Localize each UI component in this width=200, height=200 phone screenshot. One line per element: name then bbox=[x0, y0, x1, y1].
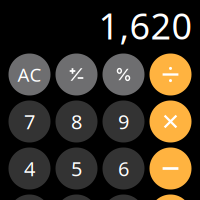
staticText: 8 bbox=[71, 108, 82, 135]
button[interactable]: 9 bbox=[102, 100, 144, 142]
button[interactable]: 7 bbox=[8, 100, 50, 142]
button[interactable]: Minus bbox=[149, 147, 191, 189]
staticText: AC bbox=[17, 62, 41, 87]
button[interactable]: 3 bbox=[102, 194, 144, 200]
button[interactable]: Percent bbox=[102, 53, 144, 95]
button[interactable]: Multiply bbox=[149, 100, 191, 142]
staticText: 4 bbox=[24, 155, 35, 182]
button[interactable]: Divide bbox=[149, 53, 191, 95]
staticText: 7 bbox=[24, 108, 35, 135]
staticText: 9 bbox=[118, 108, 129, 135]
button[interactable]: 1 bbox=[8, 194, 50, 200]
button[interactable]: Plus bbox=[149, 194, 191, 200]
staticText: 1,620 bbox=[98, 2, 192, 49]
button[interactable]: 4 bbox=[8, 147, 50, 189]
button[interactable]: 5 bbox=[55, 147, 97, 189]
button[interactable]: 2 bbox=[55, 194, 97, 200]
staticText: 5 bbox=[71, 155, 82, 182]
button[interactable]: 8 bbox=[55, 100, 97, 142]
button[interactable]: 6 bbox=[102, 147, 144, 189]
button[interactable]: Plus or minus bbox=[55, 53, 97, 95]
button[interactable]: AC bbox=[8, 53, 50, 95]
staticText: 6 bbox=[118, 155, 129, 182]
